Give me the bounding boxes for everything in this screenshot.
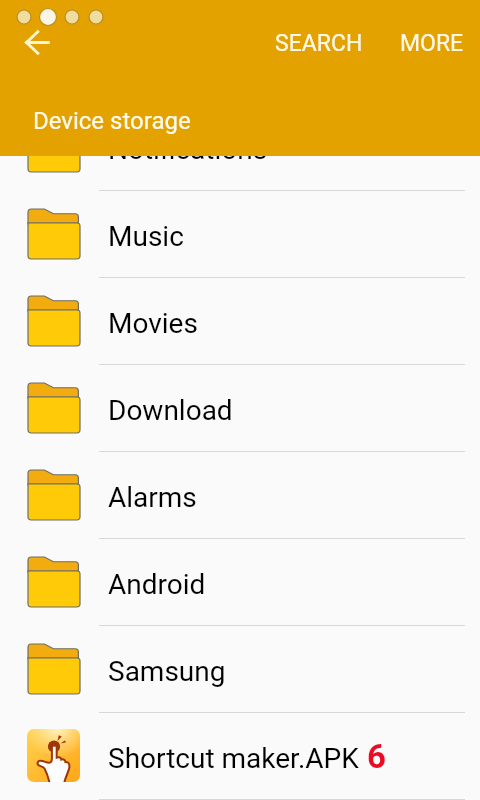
button[interactable]: Music [0,191,480,278]
button[interactable]: Shortcut maker.APK [0,713,480,800]
button[interactable]: Alarms [0,452,480,539]
staticText: Music [108,220,184,253]
button[interactable]: Movies [0,278,480,365]
staticText: Movies [108,307,198,340]
staticText: Notifications [108,133,268,166]
button[interactable]: Android [0,539,480,626]
button[interactable]: Download [0,365,480,452]
staticText: Device storage [33,107,191,135]
staticText: Android [108,568,206,601]
button[interactable]: SEARCH [259,22,379,65]
staticText: Shortcut maker.APK [108,742,359,775]
staticText: Alarms [108,481,197,514]
button[interactable]: Back [14,18,62,66]
staticText: SEARCH [275,30,363,57]
button[interactable]: Samsung [0,626,480,713]
button[interactable]: MORE [379,22,480,65]
staticText: 6 [367,737,386,776]
staticText: Download [108,394,233,427]
button[interactable]: Notifications [0,104,480,191]
staticText: Samsung [108,655,226,688]
staticText: MORE [400,30,464,57]
